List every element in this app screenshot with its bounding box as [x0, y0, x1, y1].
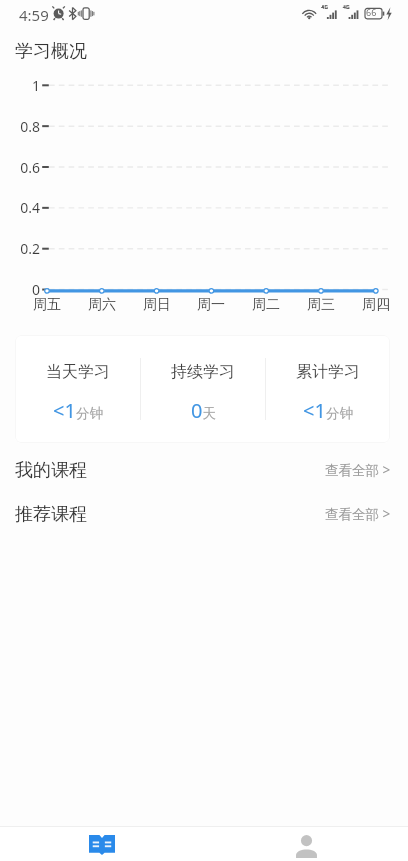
staticText: 当天学习: [46, 362, 110, 382]
button[interactable]: 我的: [204, 827, 408, 861]
staticText: 0天: [191, 397, 216, 424]
button[interactable]: 课程: [0, 827, 204, 861]
button[interactable]: 持续学习: [141, 335, 265, 443]
staticText: 66: [366, 6, 377, 18]
staticText: 0.2: [0, 239, 40, 258]
button[interactable]: 我的课程: [0, 447, 408, 493]
staticText: <1分钟: [303, 397, 353, 424]
staticText: 0: [0, 280, 40, 299]
staticText: 持续学习: [171, 362, 235, 382]
staticText: 学习概况: [15, 40, 87, 63]
staticText: 0.6: [0, 158, 40, 177]
staticText: 1: [0, 76, 40, 95]
button[interactable]: 推荐课程: [0, 491, 408, 537]
staticText: 周日: [131, 296, 183, 314]
button[interactable]: 累计学习: [266, 335, 390, 443]
staticText: 周三: [295, 296, 347, 314]
staticText: 周一: [185, 296, 237, 314]
staticText: 周六: [76, 296, 128, 314]
staticText: <1分钟: [53, 397, 103, 424]
staticText: 累计学习: [296, 362, 360, 382]
staticText: 周四: [350, 296, 402, 314]
staticText: 查看全部 >: [325, 461, 391, 479]
staticText: 4:59: [19, 5, 49, 25]
staticText: 周二: [240, 296, 292, 314]
button[interactable]: 当天学习: [15, 335, 140, 443]
staticText: 周五: [21, 296, 73, 314]
staticText: 推荐课程: [15, 503, 87, 526]
staticText: 0.8: [0, 117, 40, 136]
staticText: 0.4: [0, 198, 40, 217]
staticText: 我的课程: [15, 459, 87, 482]
staticText: 查看全部 >: [325, 505, 391, 523]
